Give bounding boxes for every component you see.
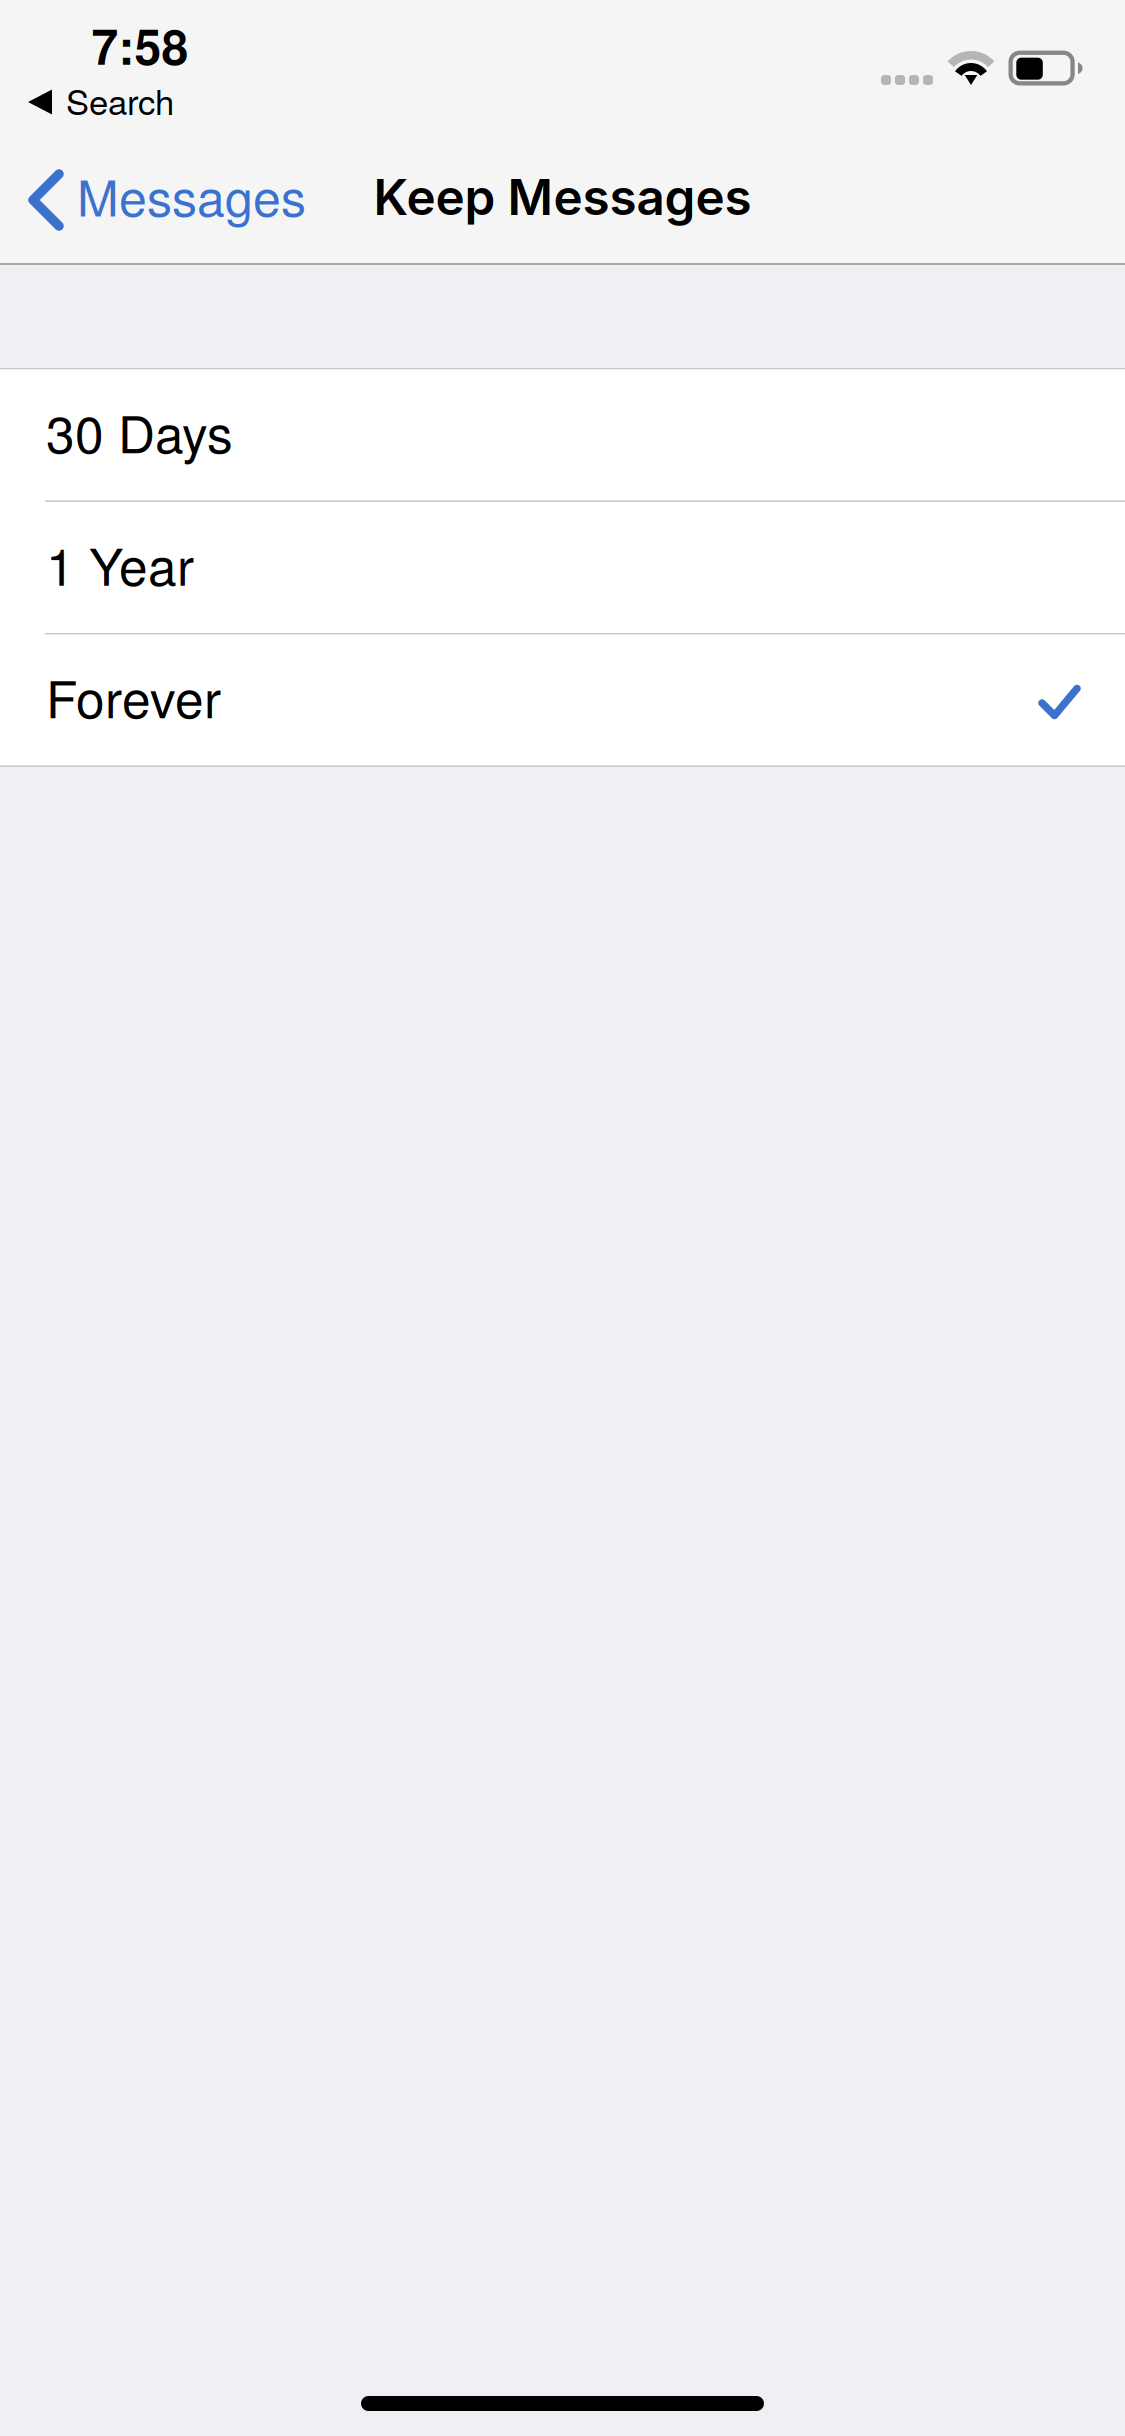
staticText: Forever — [46, 659, 221, 733]
button[interactable]: Search — [28, 80, 174, 124]
staticText: 7:58 — [91, 11, 188, 79]
staticText: 1 Year — [46, 527, 194, 600]
button[interactable]: Messages — [0, 145, 306, 265]
button[interactable]: 30 Days — [0, 369, 1125, 500]
button[interactable]: 1 Year — [0, 502, 1125, 633]
staticText: 30 Days — [46, 394, 233, 468]
staticText: Search — [66, 75, 174, 125]
staticText: Messages — [77, 159, 306, 231]
staticText: Keep Messages — [373, 167, 751, 227]
button[interactable]: Forever — [0, 634, 1125, 765]
